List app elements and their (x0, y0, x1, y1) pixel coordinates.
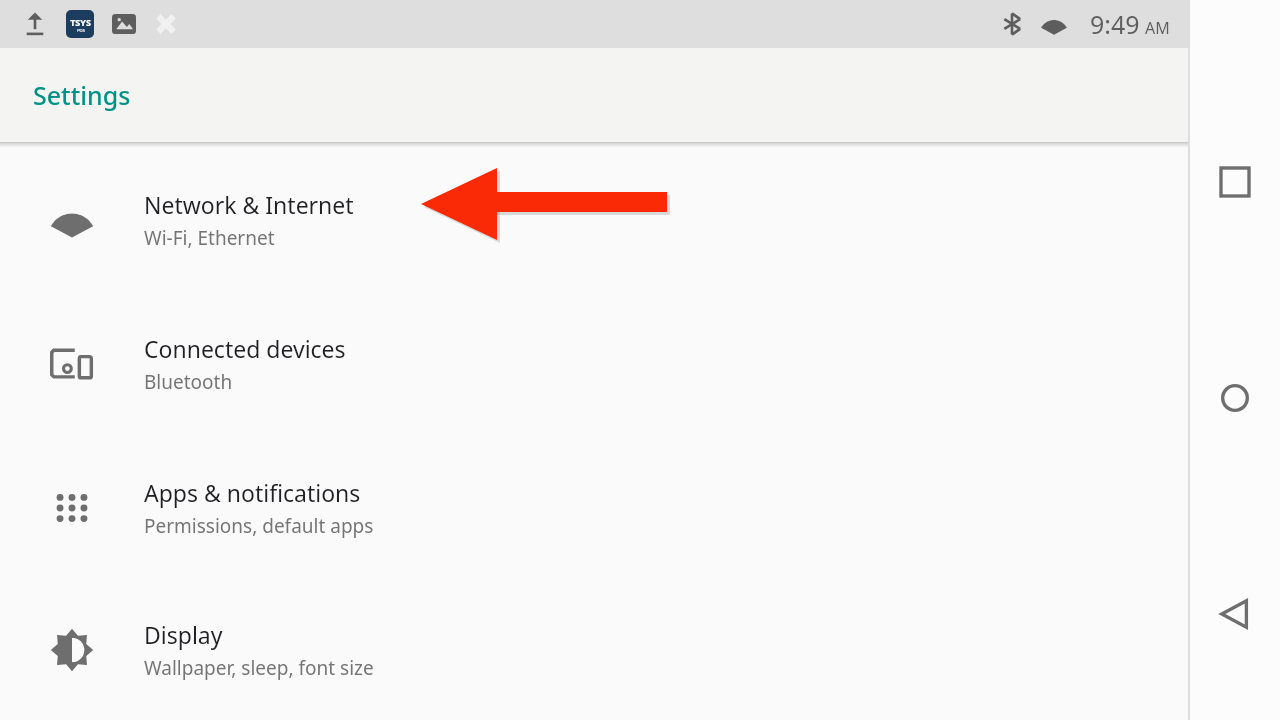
button[interactable]: Connected devices (0, 292, 1188, 436)
staticText: POS (77, 28, 85, 33)
staticText: Wi-Fi, Ethernet (144, 225, 275, 251)
staticText: Settings (33, 78, 131, 112)
staticText: TSYS (70, 16, 91, 28)
button[interactable]: Wi-Fi (0, 148, 1188, 292)
staticText: Bluetooth (144, 369, 233, 395)
staticText: Network & Internet (144, 189, 354, 220)
staticText: AM (1145, 17, 1170, 39)
staticText: Connected devices (144, 333, 346, 364)
staticText: Permissions, default apps (144, 513, 374, 539)
staticText: 9:49 (1090, 7, 1140, 41)
other: Display (49, 627, 95, 673)
button[interactable]: Back (1197, 576, 1273, 652)
button[interactable]: Display (0, 580, 1188, 720)
other: Connected devices (49, 341, 95, 387)
button[interactable]: Apps and notifications (0, 436, 1188, 580)
other: Apps and notifications (49, 485, 95, 531)
staticText: Wallpaper, sleep, font size (144, 655, 374, 681)
other: Wi-Fi (49, 197, 95, 243)
staticText: Apps & notifications (144, 477, 361, 508)
button[interactable]: Recent apps (1197, 144, 1273, 220)
staticText: Display (144, 619, 223, 650)
button[interactable]: Home (1197, 360, 1273, 436)
